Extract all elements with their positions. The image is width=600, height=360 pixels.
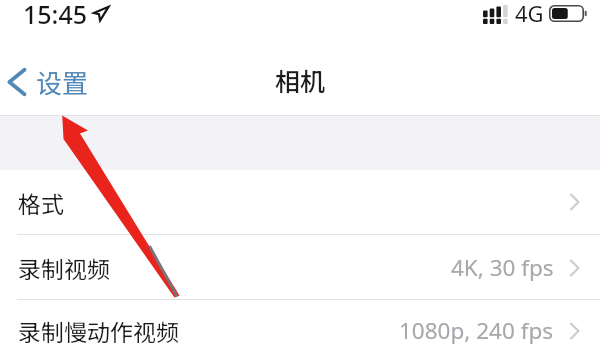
- staticText: 15:45: [23, 0, 88, 31]
- staticText: 4K, 30 fps: [451, 252, 554, 283]
- staticText: 录制视频: [18, 251, 110, 284]
- button[interactable]: Back to 设置: [0, 55, 99, 105]
- button[interactable]: 录制慢动作视频: [0, 300, 600, 360]
- button[interactable]: 录制视频: [0, 235, 600, 300]
- staticText: 设置: [36, 63, 89, 101]
- staticText: 4G: [515, 0, 544, 28]
- staticText: 相机: [275, 62, 326, 98]
- staticText: 格式: [18, 186, 64, 219]
- button[interactable]: 格式: [0, 170, 600, 235]
- staticText: 1080p, 240 fps: [399, 315, 554, 346]
- staticText: 录制慢动作视频: [18, 314, 179, 347]
